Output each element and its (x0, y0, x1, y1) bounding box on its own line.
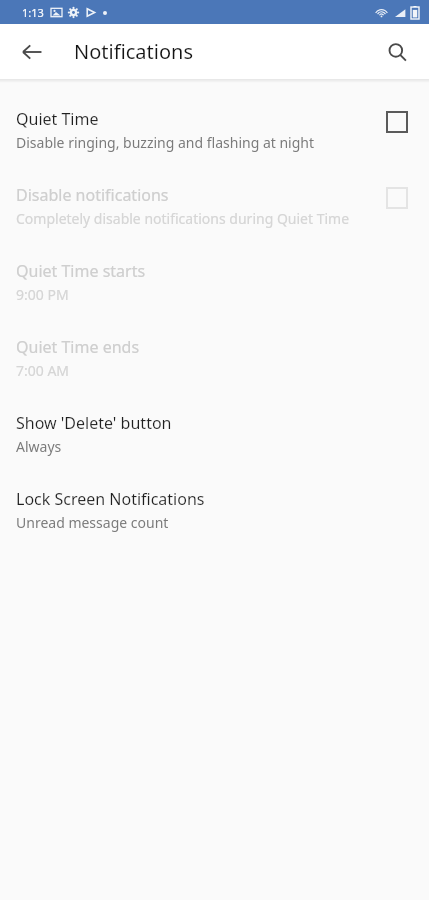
staticText: 1:13 (22, 5, 44, 20)
staticText: 9:00 PM (16, 285, 69, 304)
staticText: Notifications (74, 38, 193, 65)
button[interactable]: Show 'Delete' button (0, 404, 429, 480)
staticText: Lock Screen Notifications (16, 488, 205, 510)
button[interactable]: Lock Screen Notifications (0, 480, 429, 556)
staticText: 7:00 AM (16, 361, 70, 380)
button[interactable]: Quiet Time ends (0, 328, 429, 404)
staticText: Always (16, 437, 62, 456)
button[interactable]: Quiet Time (0, 100, 429, 176)
staticText: Show 'Delete' button (16, 412, 172, 434)
staticText: Disable ringing, buzzing and flashing at… (16, 133, 315, 152)
button[interactable]: Search (373, 28, 421, 76)
button[interactable]: Quiet Time (381, 106, 413, 138)
button[interactable]: Disable notifications (0, 176, 429, 252)
staticText: Quiet Time (16, 108, 99, 130)
staticText: Completely disable notifications during … (16, 209, 350, 228)
staticText: Quiet Time ends (16, 336, 140, 358)
button[interactable]: Quiet Time starts (0, 252, 429, 328)
button[interactable]: Disable notifications (381, 182, 413, 214)
staticText: Disable notifications (16, 184, 169, 206)
button[interactable]: Back (8, 28, 56, 76)
staticText: Quiet Time starts (16, 260, 146, 282)
staticText: Unread message count (16, 513, 169, 532)
